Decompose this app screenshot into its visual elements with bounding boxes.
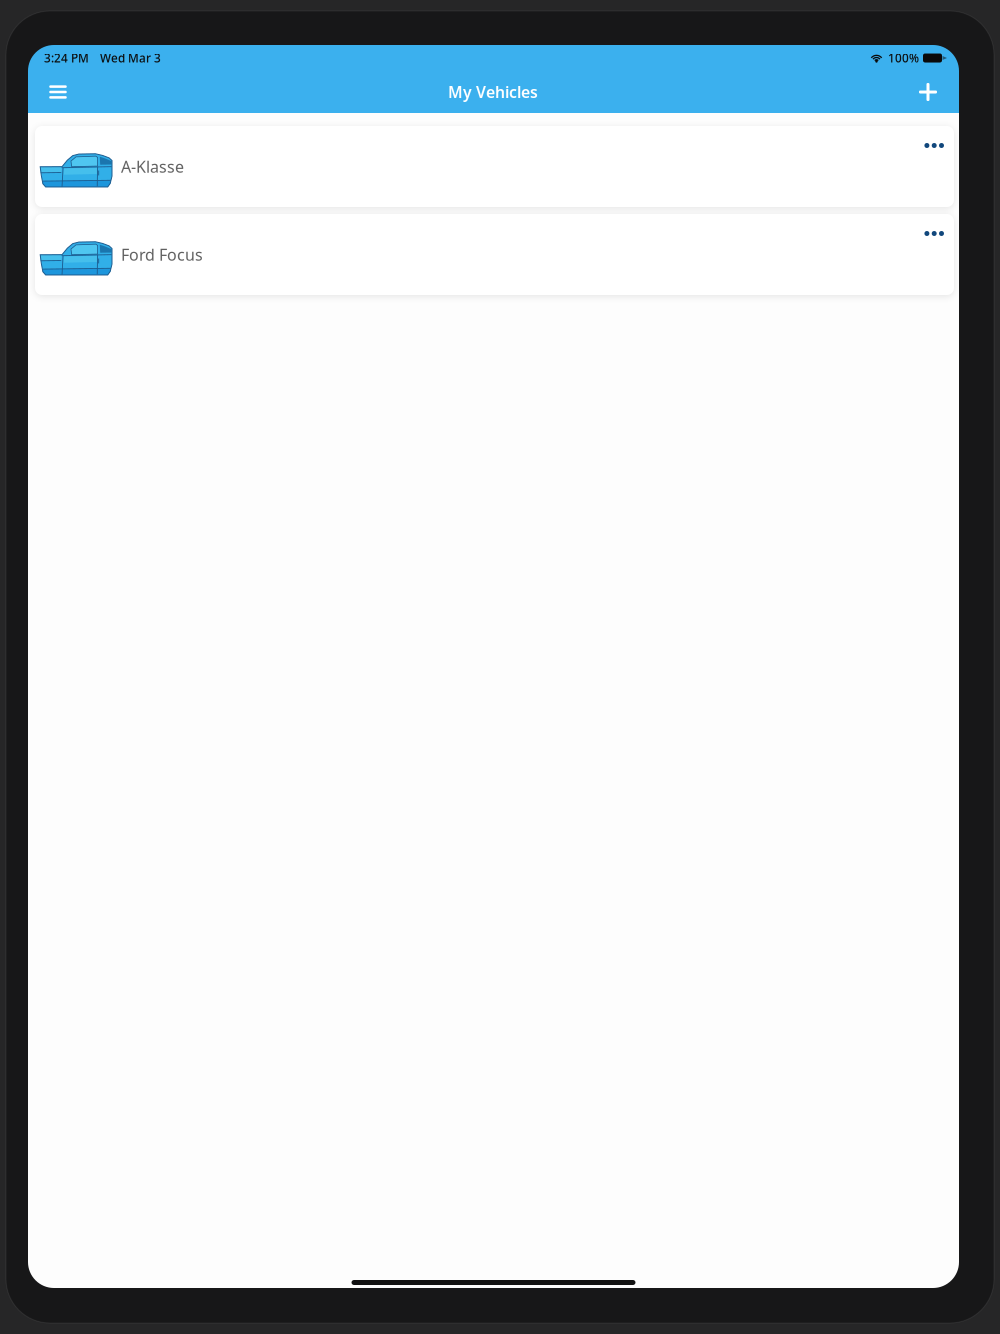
button[interactable]: Ford Focus (35, 214, 954, 295)
button[interactable]: Menu (37, 72, 79, 111)
staticText: 3:24 PM (44, 50, 89, 66)
staticText: 100% (888, 50, 919, 66)
staticText: My Vehicles (448, 81, 538, 103)
staticText: Ford Focus (121, 244, 203, 265)
staticText: Wed Mar 3 (100, 50, 161, 66)
button[interactable]: Add vehicle (907, 72, 949, 111)
staticText: A-Klasse (121, 156, 184, 177)
button[interactable]: A-Klasse (35, 126, 954, 207)
